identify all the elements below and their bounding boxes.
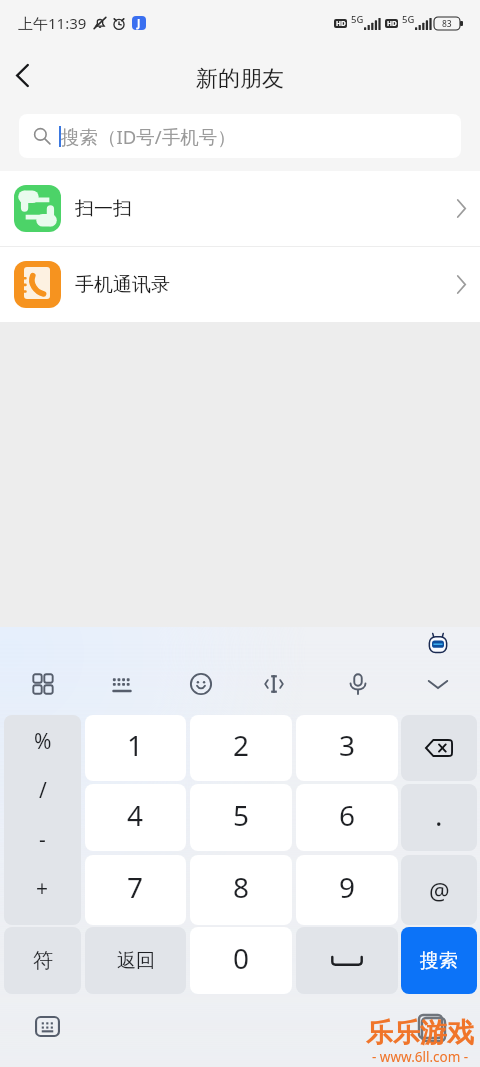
staticText: - (39, 825, 46, 854)
staticText: 3 (339, 726, 356, 764)
button[interactable]: Keyboard layout (96, 658, 148, 710)
staticText: 6 (339, 796, 356, 834)
button[interactable]: Voice input (332, 658, 384, 710)
button[interactable]: Switch input method (25, 1004, 69, 1048)
staticText: 2 (233, 726, 250, 764)
button[interactable]: 5 (190, 784, 292, 851)
staticText: HD (387, 19, 397, 28)
staticText: 5G (402, 13, 415, 26)
button[interactable]: . (401, 784, 477, 851)
button[interactable]: 符 (4, 927, 81, 994)
button[interactable]: 7 (85, 855, 186, 925)
staticText: 9 (339, 868, 356, 906)
button[interactable]: 1 (85, 715, 186, 781)
button[interactable]: 4 (85, 784, 186, 851)
staticText: 搜索 (420, 949, 458, 973)
button[interactable]: 2 (190, 715, 292, 781)
staticText: % (34, 727, 52, 756)
staticText: 符 (33, 948, 53, 973)
staticText: 新的朋友 (196, 65, 284, 93)
button[interactable]: 8 (190, 855, 292, 925)
button[interactable]: Emoji (175, 658, 227, 710)
button[interactable]: 手机通讯录 (0, 247, 480, 322)
staticText: 7 (127, 868, 144, 906)
button[interactable]: % (4, 715, 81, 925)
staticText: 8 (233, 868, 250, 906)
button[interactable]: @ (401, 855, 477, 925)
staticText: 4 (127, 796, 144, 834)
staticText: HD (336, 19, 346, 28)
button[interactable]: 3 (296, 715, 398, 781)
button[interactable]: 0 (190, 927, 292, 994)
button[interactable]: 搜索（ID号/手机号） (19, 114, 461, 158)
button[interactable] (296, 927, 398, 994)
button[interactable]: Input panels (17, 658, 69, 710)
button[interactable]: AI assistant (424, 629, 452, 657)
staticText: / (39, 776, 47, 805)
staticText: 返回 (117, 949, 155, 973)
staticText: @ (429, 875, 450, 906)
staticText: - www.6ll.com - (372, 1048, 469, 1066)
staticText: 扫一扫 (75, 197, 132, 221)
button[interactable]: 返回 (85, 927, 186, 994)
button[interactable]: 搜索 (401, 927, 477, 994)
staticText: 手机通讯录 (75, 273, 170, 297)
staticText: 乐乐游戏 (366, 1016, 474, 1050)
button[interactable]: 扫一扫 (0, 171, 480, 246)
staticText: . (435, 796, 443, 834)
staticText: 5 (233, 796, 250, 834)
staticText: + (36, 874, 49, 903)
staticText: 0 (233, 939, 250, 977)
button[interactable]: 9 (296, 855, 398, 925)
staticText: J (137, 16, 141, 30)
button[interactable]: Hide keyboard (412, 658, 464, 710)
button[interactable]: Back (0, 50, 47, 100)
staticText: 上午11:39 (18, 13, 87, 33)
staticText: 83 (442, 18, 452, 30)
staticText: 5G (351, 13, 364, 26)
button[interactable] (401, 715, 477, 781)
staticText: 1 (127, 726, 144, 764)
staticText: 搜索（ID号/手机号） (61, 124, 236, 149)
button[interactable]: 6 (296, 784, 398, 851)
button[interactable]: Move cursor (248, 658, 300, 710)
